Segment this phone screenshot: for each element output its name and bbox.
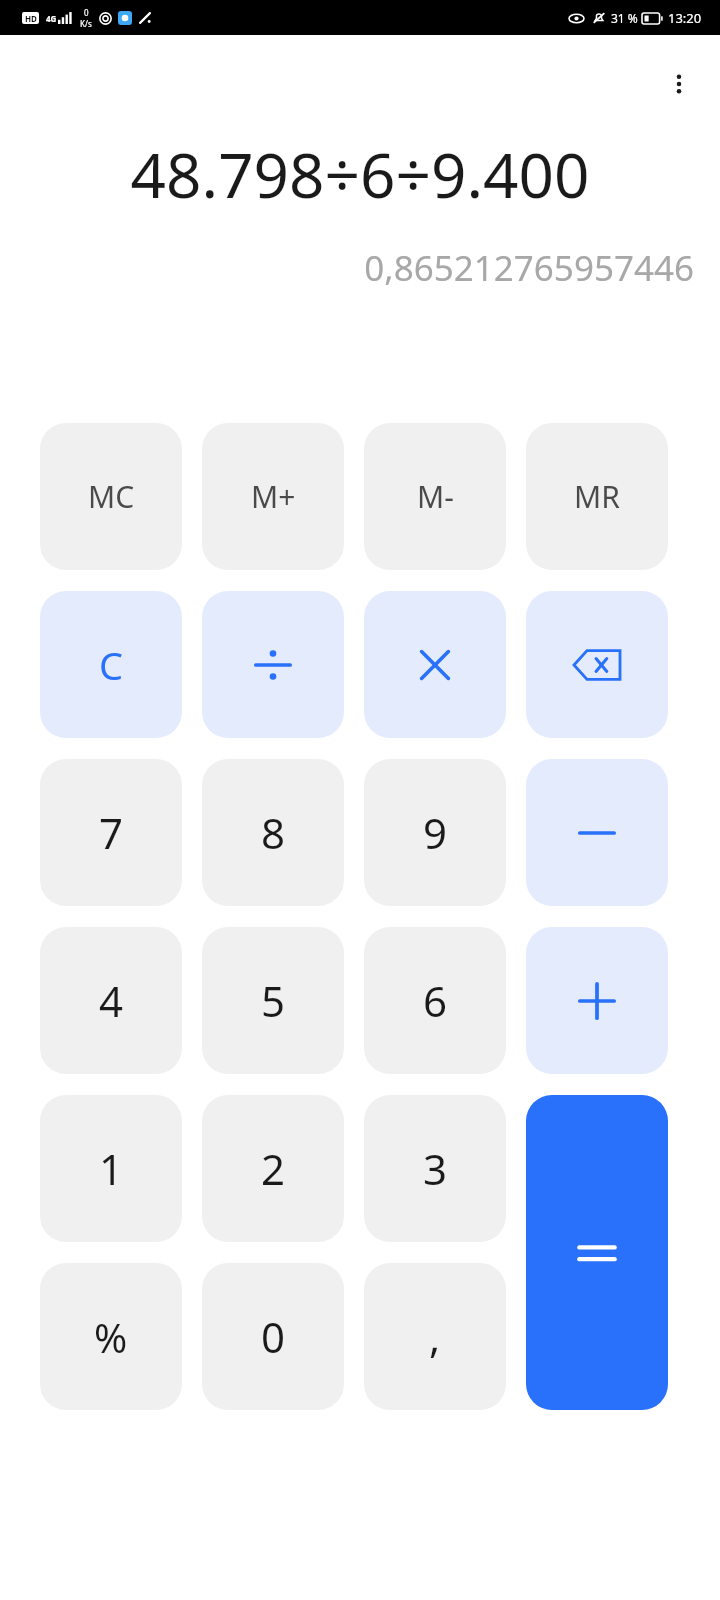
button[interactable]: MC xyxy=(40,423,182,570)
button[interactable]: C xyxy=(40,591,182,738)
staticText: 1 xyxy=(99,1140,124,1197)
button[interactable]: % xyxy=(40,1263,182,1410)
button[interactable]: 2 xyxy=(202,1095,344,1242)
staticText: 48.798÷6÷9.400 xyxy=(26,132,694,216)
button[interactable]: Multiply xyxy=(364,591,506,738)
button[interactable]: Equals xyxy=(526,1095,668,1410)
button[interactable]: 8 xyxy=(202,759,344,906)
staticText: 0 xyxy=(84,7,89,18)
button[interactable]: 0 xyxy=(202,1263,344,1410)
button[interactable]: 3 xyxy=(364,1095,506,1242)
staticText: 31 % xyxy=(611,10,638,26)
staticText: K/s xyxy=(80,18,92,29)
button[interactable]: More options xyxy=(651,56,707,112)
staticText: 0 xyxy=(261,1308,286,1365)
staticText: 8 xyxy=(261,804,286,861)
staticText: 3 xyxy=(423,1140,448,1197)
staticText: 13:20 xyxy=(668,9,702,27)
staticText: 9 xyxy=(423,804,448,861)
button[interactable]: Backspace xyxy=(526,591,668,738)
button[interactable]: 5 xyxy=(202,927,344,1074)
button[interactable]: M+ xyxy=(202,423,344,570)
button[interactable]: 7 xyxy=(40,759,182,906)
staticText: MC xyxy=(88,476,135,517)
staticText: M- xyxy=(417,476,454,517)
staticText: 4G xyxy=(46,13,57,24)
staticText: 2 xyxy=(261,1140,286,1197)
staticText: M+ xyxy=(251,476,296,517)
staticText: % xyxy=(94,1310,128,1364)
staticText: 4 xyxy=(99,972,124,1029)
button[interactable]: Divide xyxy=(202,591,344,738)
staticText: 6 xyxy=(423,972,448,1029)
button[interactable]: MR xyxy=(526,423,668,570)
button[interactable]: M- xyxy=(364,423,506,570)
button[interactable]: 1 xyxy=(40,1095,182,1242)
button[interactable]: Minus xyxy=(526,759,668,906)
button[interactable]: 6 xyxy=(364,927,506,1074)
button[interactable]: 4 xyxy=(40,927,182,1074)
staticText: MR xyxy=(574,476,620,517)
staticText: 0,865212765957446 xyxy=(26,244,694,292)
staticText: , xyxy=(429,1308,441,1365)
staticText: 7 xyxy=(99,804,124,861)
staticText: 5 xyxy=(261,972,286,1029)
staticText: C xyxy=(99,639,124,691)
button[interactable]: , xyxy=(364,1263,506,1410)
button[interactable]: Plus xyxy=(526,927,668,1074)
button[interactable]: 9 xyxy=(364,759,506,906)
staticText: HD xyxy=(25,13,37,24)
